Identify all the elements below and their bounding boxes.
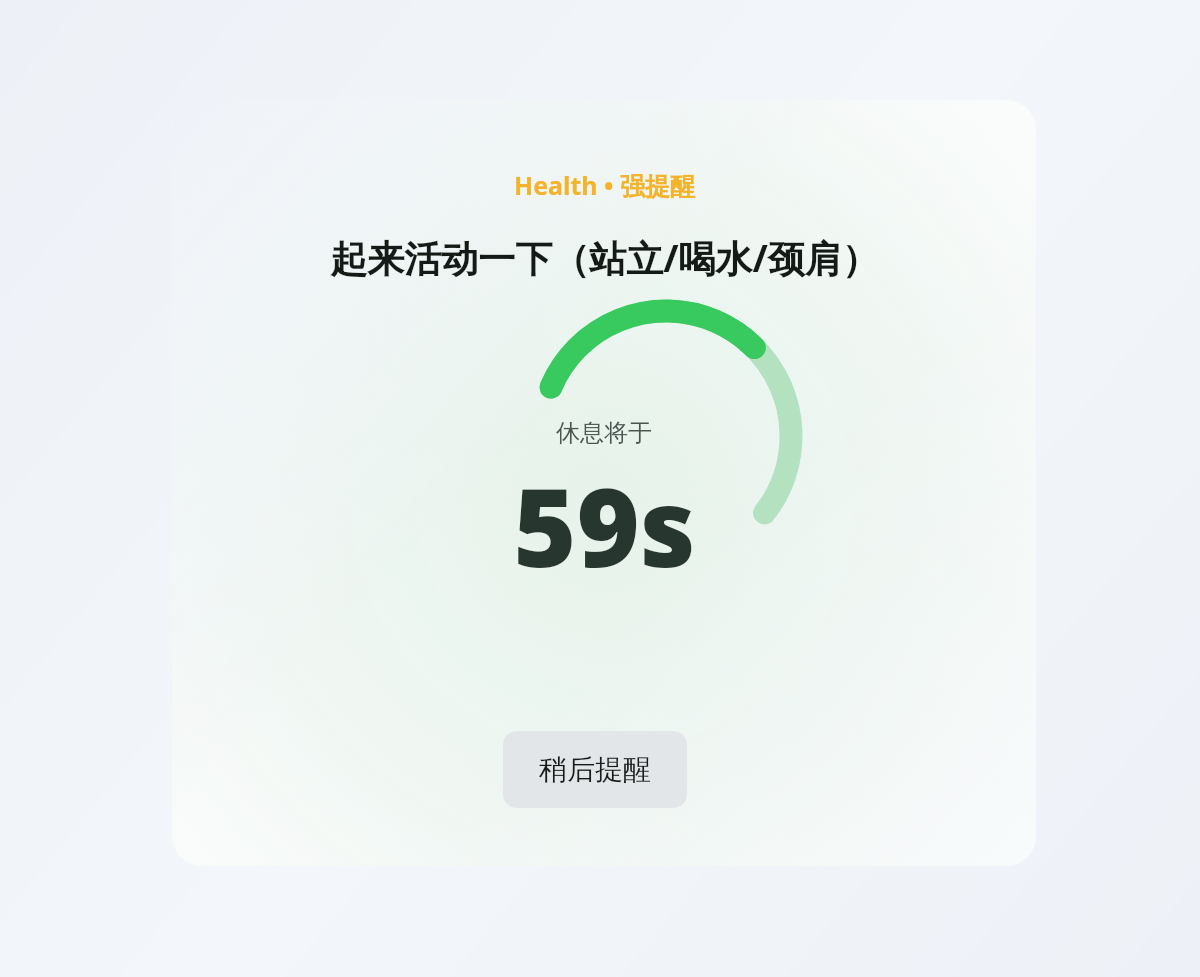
staticText: 59s xyxy=(513,452,696,599)
staticText: Health • 强提醒 xyxy=(514,168,695,202)
staticText: 起来活动一下（站立/喝水/颈肩） xyxy=(330,232,879,283)
staticText: 稍后提醒 xyxy=(539,752,651,787)
staticText: 休息将于 xyxy=(556,418,652,448)
button[interactable]: 稍后提醒 xyxy=(503,731,687,808)
